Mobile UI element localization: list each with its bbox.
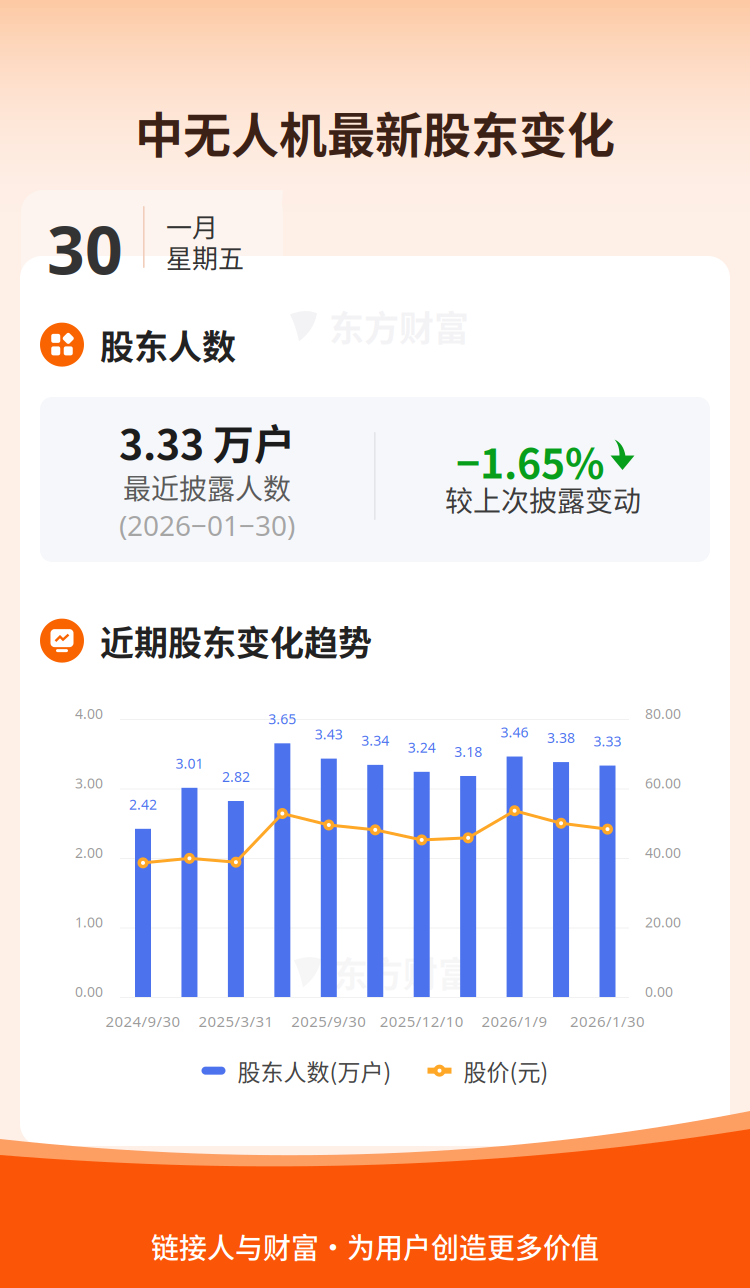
staticText: 2026/1/9 [482,1011,548,1031]
staticText: 20.00 [645,912,681,932]
staticText: 2025/12/10 [380,1011,464,1031]
staticText: 股东人数(万户) [237,1054,391,1087]
staticText: 股价(元) [463,1054,548,1087]
staticText: 中无人机最新股东变化 [135,97,615,166]
staticText: 3.65 [268,709,296,728]
staticText: 3.01 [175,754,203,773]
staticText: 3.43 [315,725,343,744]
staticText: 2026/1/30 [570,1011,645,1031]
staticText: 3.00 [75,773,103,793]
staticText: 东方财富 [329,301,469,352]
staticText: 2024/9/30 [105,1011,180,1031]
staticText: 60.00 [645,773,681,793]
staticText: 0.00 [645,982,673,1001]
staticText: 3.33 万户 [119,412,295,471]
staticText: 近期股东变化趋势 [100,616,372,665]
staticText: 1.00 [75,912,103,932]
staticText: 2025/9/30 [291,1011,366,1031]
staticText: 3.18 [454,742,482,761]
staticText: 较上次披露变动 [445,479,641,519]
staticText: 30 [47,204,123,294]
staticText: 4.00 [75,704,103,723]
staticText: 40.00 [645,843,681,862]
staticText: 3.34 [361,731,389,750]
staticText: 3.24 [408,738,436,757]
staticText: 0.00 [75,982,103,1001]
staticText: 2.82 [222,767,250,786]
staticText: 最近披露人数 [123,467,291,507]
staticText: (2026−01−30) [119,506,295,544]
staticText: 3.33 [593,732,621,751]
staticText: 2.00 [75,843,103,862]
staticText: 东方财富 [333,947,473,998]
staticText: 一月 [166,207,218,245]
staticText: 80.00 [645,704,681,723]
staticText: −1.65% [456,431,604,490]
staticText: 星期五 [166,238,244,276]
staticText: 2.42 [129,795,157,814]
staticText: 3.46 [501,722,529,742]
staticText: 2025/3/31 [198,1011,273,1031]
staticText: 股东人数 [100,320,236,369]
staticText: 3.38 [547,728,575,747]
staticText: 链接人与财富·为用户创造更多价值 [151,1226,599,1266]
